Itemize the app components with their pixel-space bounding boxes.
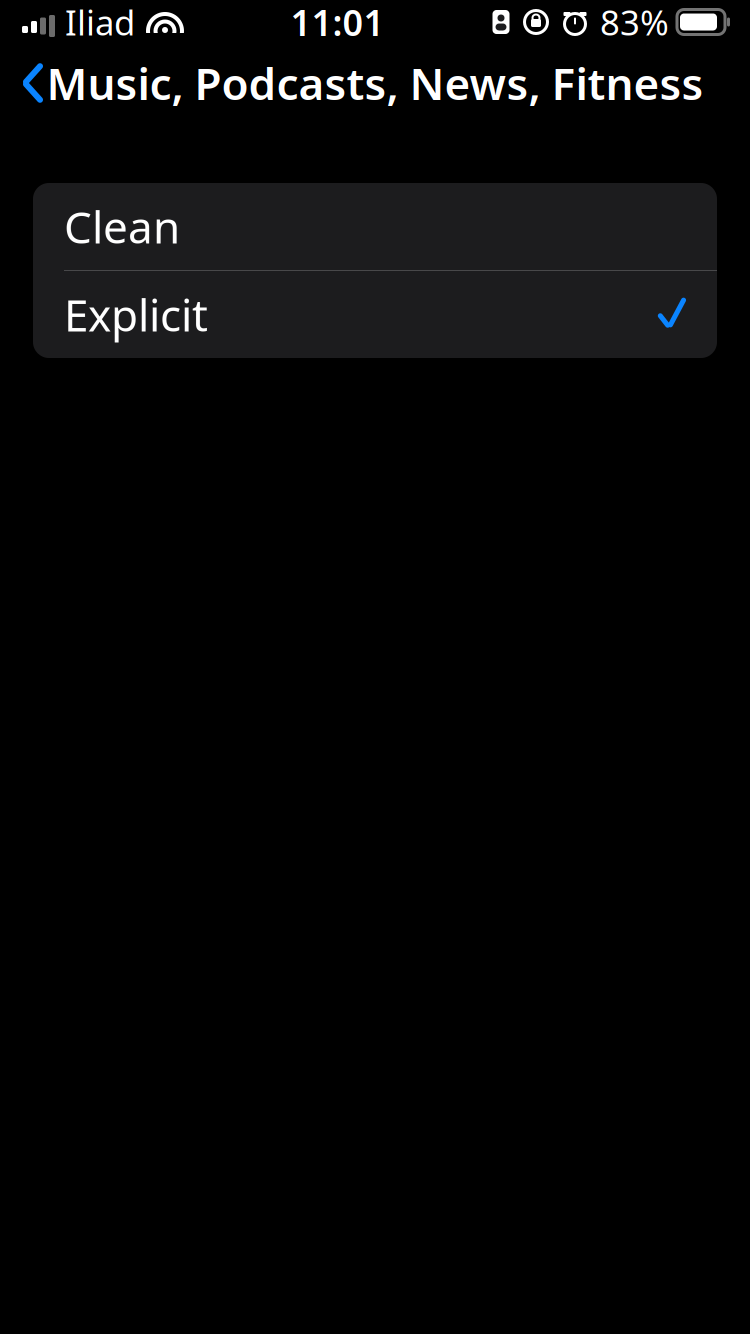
staticText: Clean bbox=[64, 197, 180, 256]
staticText: 83% bbox=[600, 0, 669, 45]
button[interactable]: Explicit bbox=[33, 271, 717, 358]
staticText: Explicit bbox=[64, 285, 208, 344]
staticText: Music, Podcasts, News, Fitness bbox=[46, 54, 703, 112]
staticText: 11:01 bbox=[290, 0, 384, 46]
button[interactable]: Back bbox=[2, 52, 64, 114]
button[interactable]: Clean bbox=[33, 183, 717, 270]
staticText: Iliad bbox=[65, 0, 135, 45]
